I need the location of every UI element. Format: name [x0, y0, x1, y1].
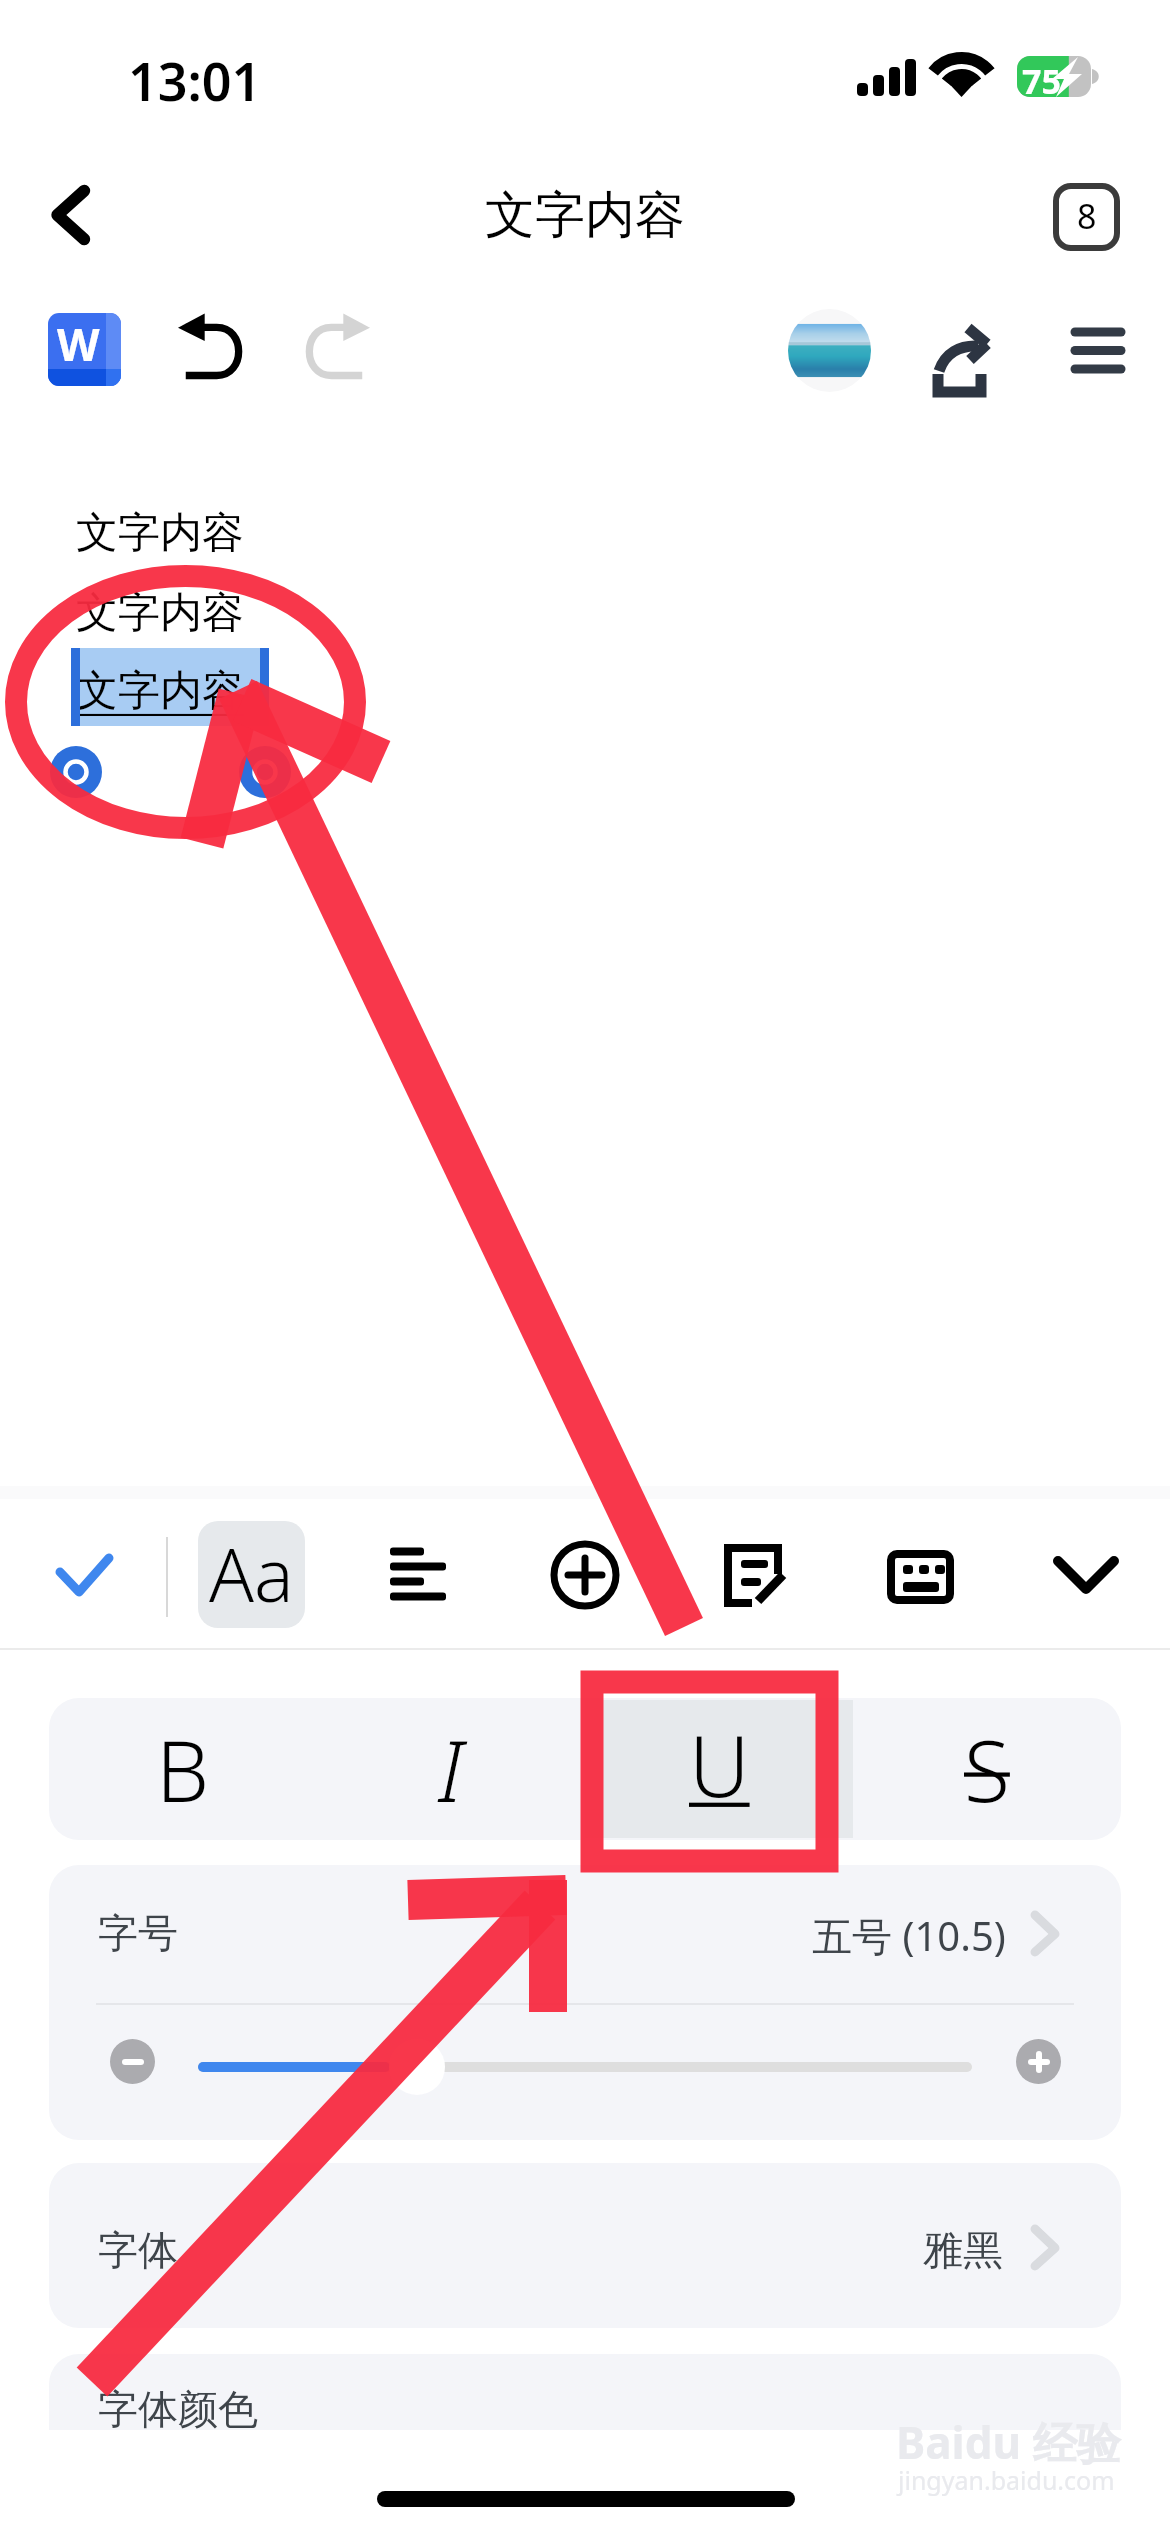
staticText: Baidu 经验: [896, 2412, 1121, 2472]
button[interactable]: U: [585, 1700, 853, 1838]
button[interactable]: 字体: [49, 2163, 1121, 2328]
staticText: 五号 (10.5): [812, 1908, 1006, 1963]
staticText: U: [689, 1707, 750, 1821]
staticText: 75: [1022, 58, 1061, 104]
staticText: 13:01: [128, 45, 262, 116]
staticText: 8: [1077, 193, 1097, 239]
staticText: S: [964, 1712, 1010, 1826]
button[interactable]: Page count: [1026, 162, 1146, 272]
button[interactable]: Done: [34, 1527, 134, 1627]
button[interactable]: Redo: [290, 305, 376, 391]
staticText: 文字内容: [485, 184, 685, 247]
button[interactable]: 字体颜色: [49, 2354, 1121, 2430]
button[interactable]: Word document: [48, 313, 121, 386]
staticText: jingyan.baidu.com: [898, 2463, 1115, 2497]
button[interactable]: Review: [702, 1527, 802, 1627]
button[interactable]: B: [49, 1698, 317, 1840]
button[interactable]: 字号: [49, 1865, 1121, 2003]
button[interactable]: S: [853, 1698, 1121, 1840]
button[interactable]: Insert: [535, 1527, 635, 1627]
button[interactable]: Profile picture: [788, 309, 871, 392]
button[interactable]: Font style: [198, 1521, 305, 1628]
staticText: 文字内容: [76, 665, 244, 718]
button[interactable]: Keyboard: [868, 1527, 968, 1627]
button[interactable]: Increase size: [1016, 2039, 1061, 2084]
staticText: W: [57, 314, 100, 374]
staticText: B: [156, 1712, 210, 1826]
staticText: Aa: [209, 1523, 294, 1624]
staticText: 雅黑: [923, 2225, 1003, 2275]
button[interactable]: Back: [10, 162, 120, 267]
staticText: 字体: [98, 2225, 178, 2275]
button[interactable]: Collapse: [1036, 1527, 1136, 1627]
staticText: 文字内容: [76, 507, 244, 560]
staticText: 文字内容: [76, 587, 244, 640]
button[interactable]: Menu: [1030, 305, 1130, 405]
button[interactable]: Decrease size: [110, 2039, 155, 2084]
button[interactable]: I: [317, 1698, 585, 1840]
staticText: 字号: [98, 1908, 178, 1958]
button[interactable]: Paragraph: [368, 1527, 468, 1627]
button[interactable]: Undo: [172, 305, 258, 391]
staticText: 字体颜色: [98, 2384, 258, 2430]
staticText: I: [438, 1712, 464, 1826]
button[interactable]: Share: [912, 303, 1004, 395]
